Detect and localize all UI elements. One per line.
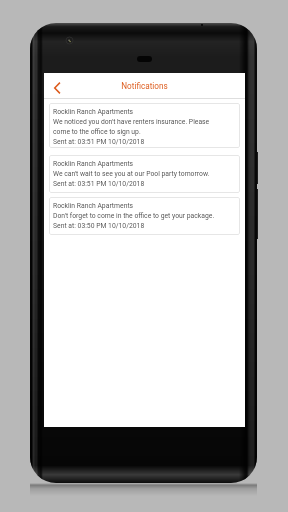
button[interactable]: Rocklin Ranch Apartments We can't wait t… — [49, 155, 240, 193]
staticText: Notifications — [121, 81, 168, 91]
staticText: Rocklin Ranch Apartments We noticed you … — [53, 108, 210, 145]
button[interactable]: Rocklin Ranch Apartments Don't forget to… — [49, 197, 240, 235]
button[interactable]: Rocklin Ranch Apartments We noticed you … — [49, 103, 240, 148]
staticText: Rocklin Ranch Apartments Don't forget to… — [53, 202, 215, 229]
staticText: Rocklin Ranch Apartments We can't wait t… — [53, 160, 210, 187]
button[interactable]: Back — [48, 79, 66, 97]
